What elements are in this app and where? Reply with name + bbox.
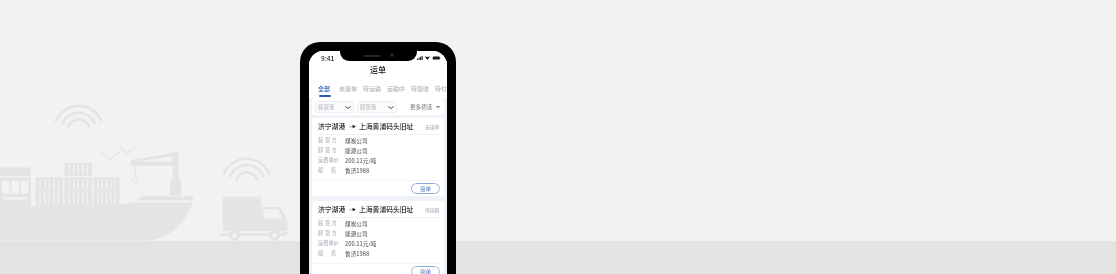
staticText: 更多筛选 xyxy=(410,103,433,111)
staticText: 9:41 xyxy=(321,54,335,63)
staticText: 鲁济1988 xyxy=(345,249,370,257)
staticText: 待运输 xyxy=(363,84,382,93)
staticText: 煤炭公司 xyxy=(345,136,368,144)
button[interactable]: 全部 xyxy=(313,77,335,98)
button[interactable]: 装货港 xyxy=(315,101,354,113)
staticText: 待运输 xyxy=(425,206,440,213)
staticText: 船 名 xyxy=(318,166,337,174)
button[interactable]: 济宁湖港 xyxy=(312,118,444,196)
staticText: 上海黄浦码头旧址 xyxy=(359,121,414,131)
button[interactable]: 未接单 xyxy=(337,77,359,98)
staticText: 卸 货 方 xyxy=(318,146,338,154)
button[interactable]: 待签收 xyxy=(409,77,431,98)
staticText: 能源公司 xyxy=(345,146,368,154)
staticText: 卸货港 xyxy=(360,103,377,111)
button[interactable]: 待运输 xyxy=(361,77,383,98)
staticText: 200.11元/吨 xyxy=(345,156,377,164)
staticText: 全部 xyxy=(318,84,331,93)
staticText: 200.11元/吨 xyxy=(345,239,377,247)
staticText: 运费单价 xyxy=(318,156,339,164)
staticText: 接单 xyxy=(420,185,432,193)
staticText: 装货港 xyxy=(318,103,335,111)
button[interactable]: 待付款 xyxy=(433,77,447,98)
staticText: 装 货 方 xyxy=(318,136,338,144)
button[interactable]: 接单 xyxy=(411,266,440,274)
staticText: 运费单价 xyxy=(318,239,339,247)
staticText: 运单 xyxy=(370,64,386,76)
staticText: 运输中 xyxy=(387,84,406,93)
staticText: 鲁济1988 xyxy=(345,166,370,174)
button[interactable]: 接单 xyxy=(411,183,440,194)
staticText: 接单 xyxy=(420,268,432,274)
staticText: 卸 货 方 xyxy=(318,229,338,237)
button[interactable]: 济宁湖港 xyxy=(312,201,444,274)
staticText: 济宁湖港 xyxy=(318,121,346,131)
staticText: 济宁湖港 xyxy=(318,204,346,214)
staticText: 能源公司 xyxy=(345,229,368,237)
staticText: 煤炭公司 xyxy=(345,219,368,227)
button[interactable]: 更多筛选 xyxy=(409,101,442,113)
button[interactable]: 卸货港 xyxy=(357,101,397,113)
staticText: 待付款 xyxy=(435,84,447,93)
staticText: 上海黄浦码头旧址 xyxy=(359,204,414,214)
button[interactable]: 运输中 xyxy=(385,77,407,98)
staticText: 未接单 xyxy=(339,84,358,93)
staticText: 装 货 方 xyxy=(318,219,338,227)
staticText: 船 名 xyxy=(318,249,337,257)
staticText: 待签收 xyxy=(411,84,430,93)
staticText: 未接单 xyxy=(425,123,440,130)
